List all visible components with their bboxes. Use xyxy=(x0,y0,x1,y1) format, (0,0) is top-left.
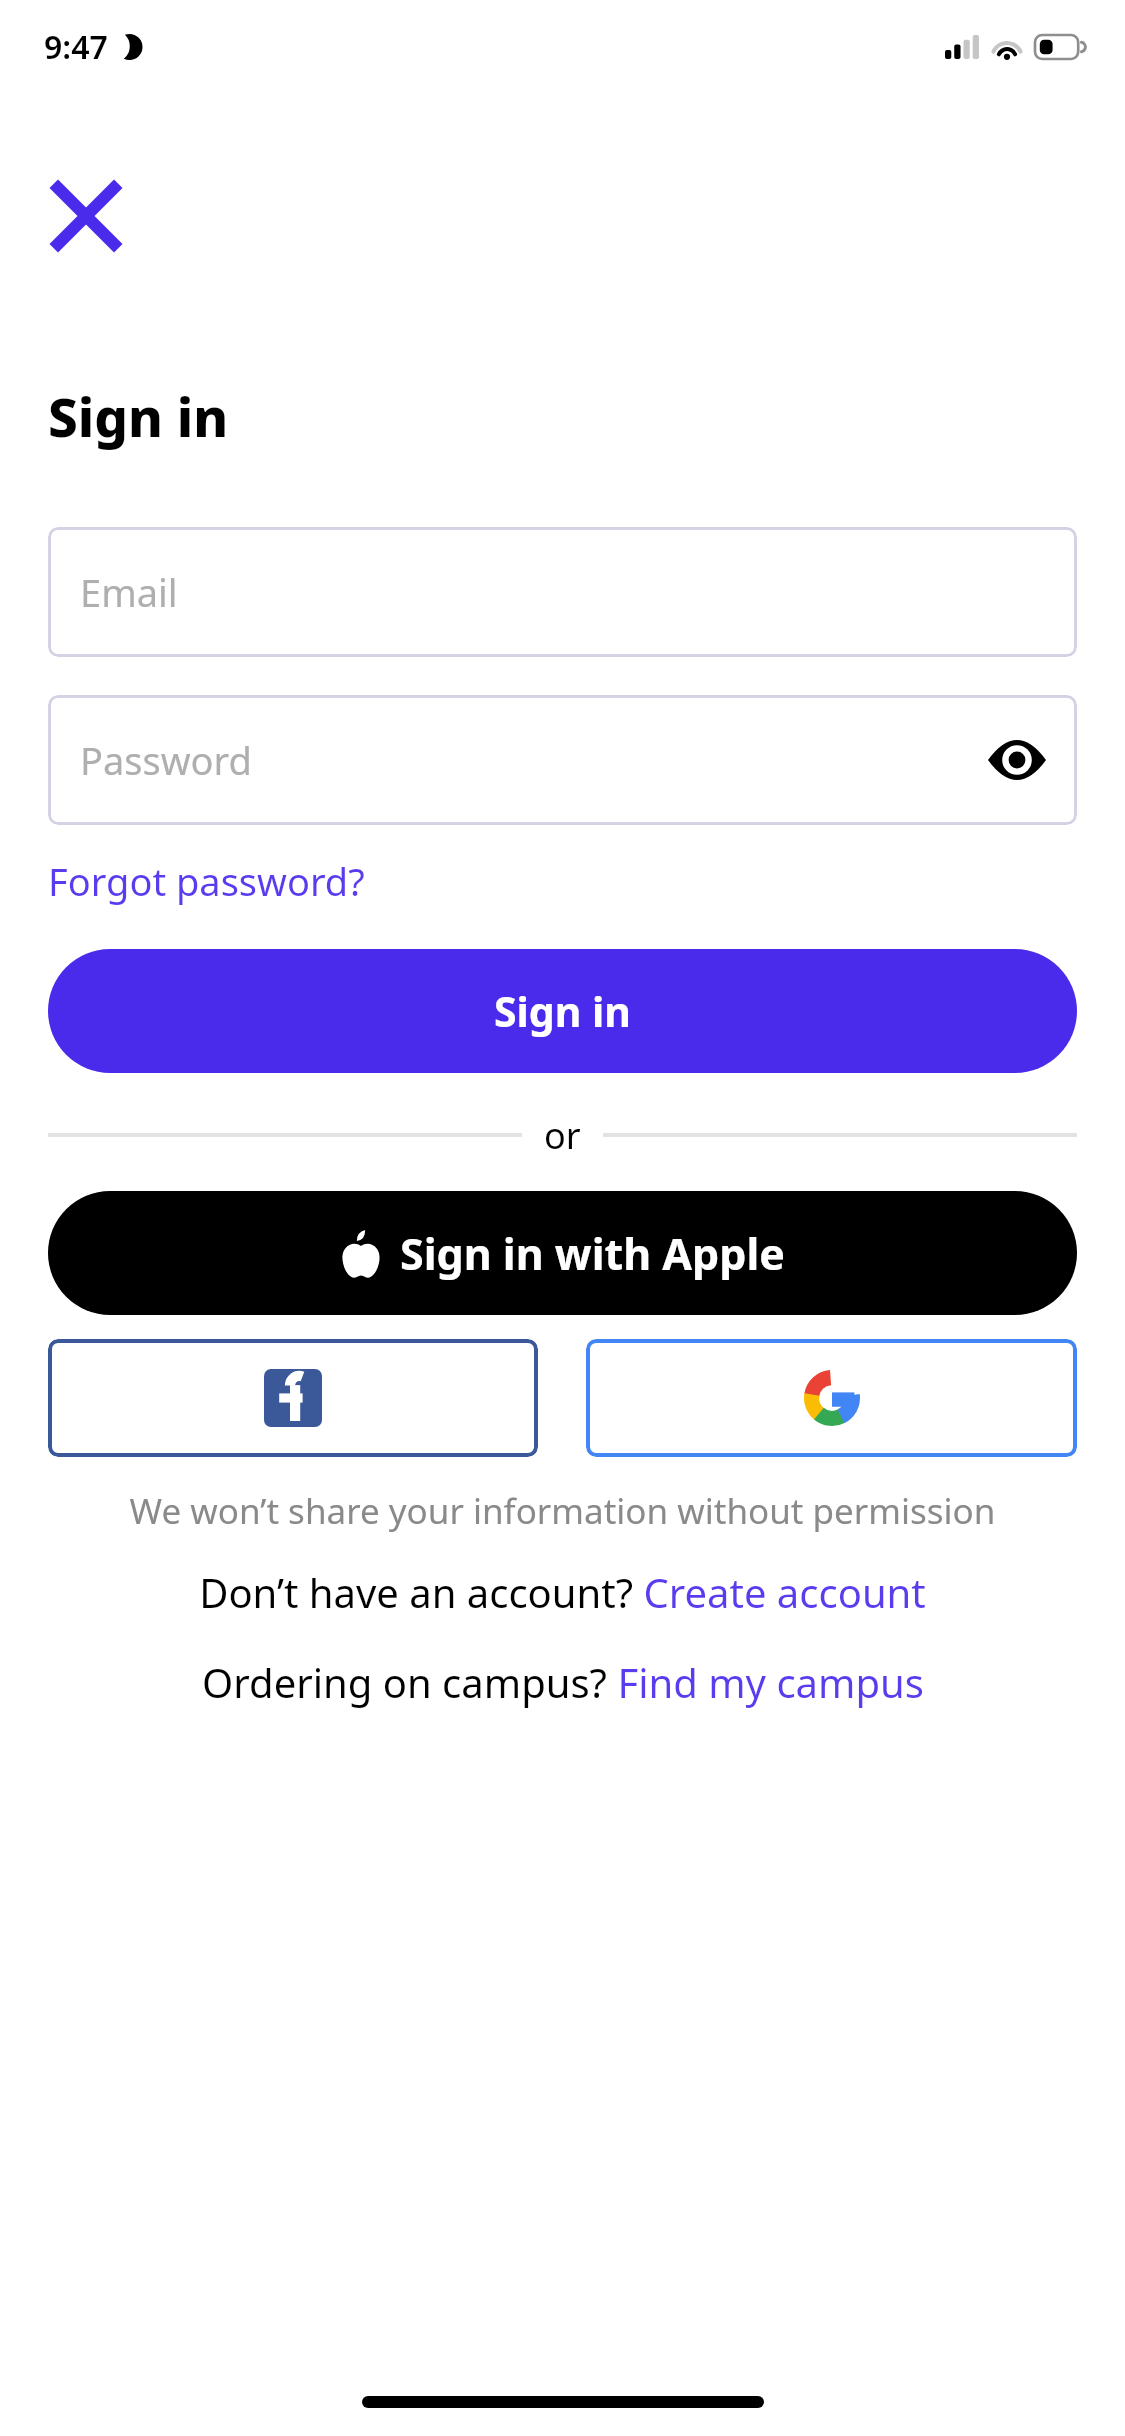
staticText: Sign in xyxy=(494,983,631,1039)
button[interactable]: Show password xyxy=(973,716,1061,804)
staticText: Ordering on campus? Find my campus xyxy=(202,1655,924,1709)
button[interactable]: Close xyxy=(30,160,142,272)
staticText: We won’t share your information without … xyxy=(0,1487,1125,1535)
button[interactable]: Forgot password? xyxy=(48,849,365,913)
staticText: Sign in with Apple xyxy=(400,1224,785,1283)
staticText: Forgot password? xyxy=(48,855,365,907)
button[interactable]: Email xyxy=(48,527,1077,657)
button[interactable]: Sign in with Apple xyxy=(48,1191,1077,1315)
staticText: Password xyxy=(80,734,252,786)
button[interactable]: Sign in xyxy=(48,949,1077,1073)
button[interactable]: Ordering on campus? Find my campus xyxy=(0,1655,1125,1709)
button[interactable]: Sign in with Google xyxy=(586,1339,1077,1457)
staticText: or xyxy=(544,1111,581,1160)
staticText: Sign in xyxy=(48,380,229,452)
staticText: 9:47 xyxy=(44,25,108,69)
button[interactable]: Don’t have an account? Create account xyxy=(0,1565,1125,1619)
button[interactable]: Sign in with Facebook xyxy=(48,1339,538,1457)
staticText: Don’t have an account? Create account xyxy=(199,1565,926,1619)
button[interactable]: Password xyxy=(48,695,1077,825)
staticText: Email xyxy=(80,566,178,618)
